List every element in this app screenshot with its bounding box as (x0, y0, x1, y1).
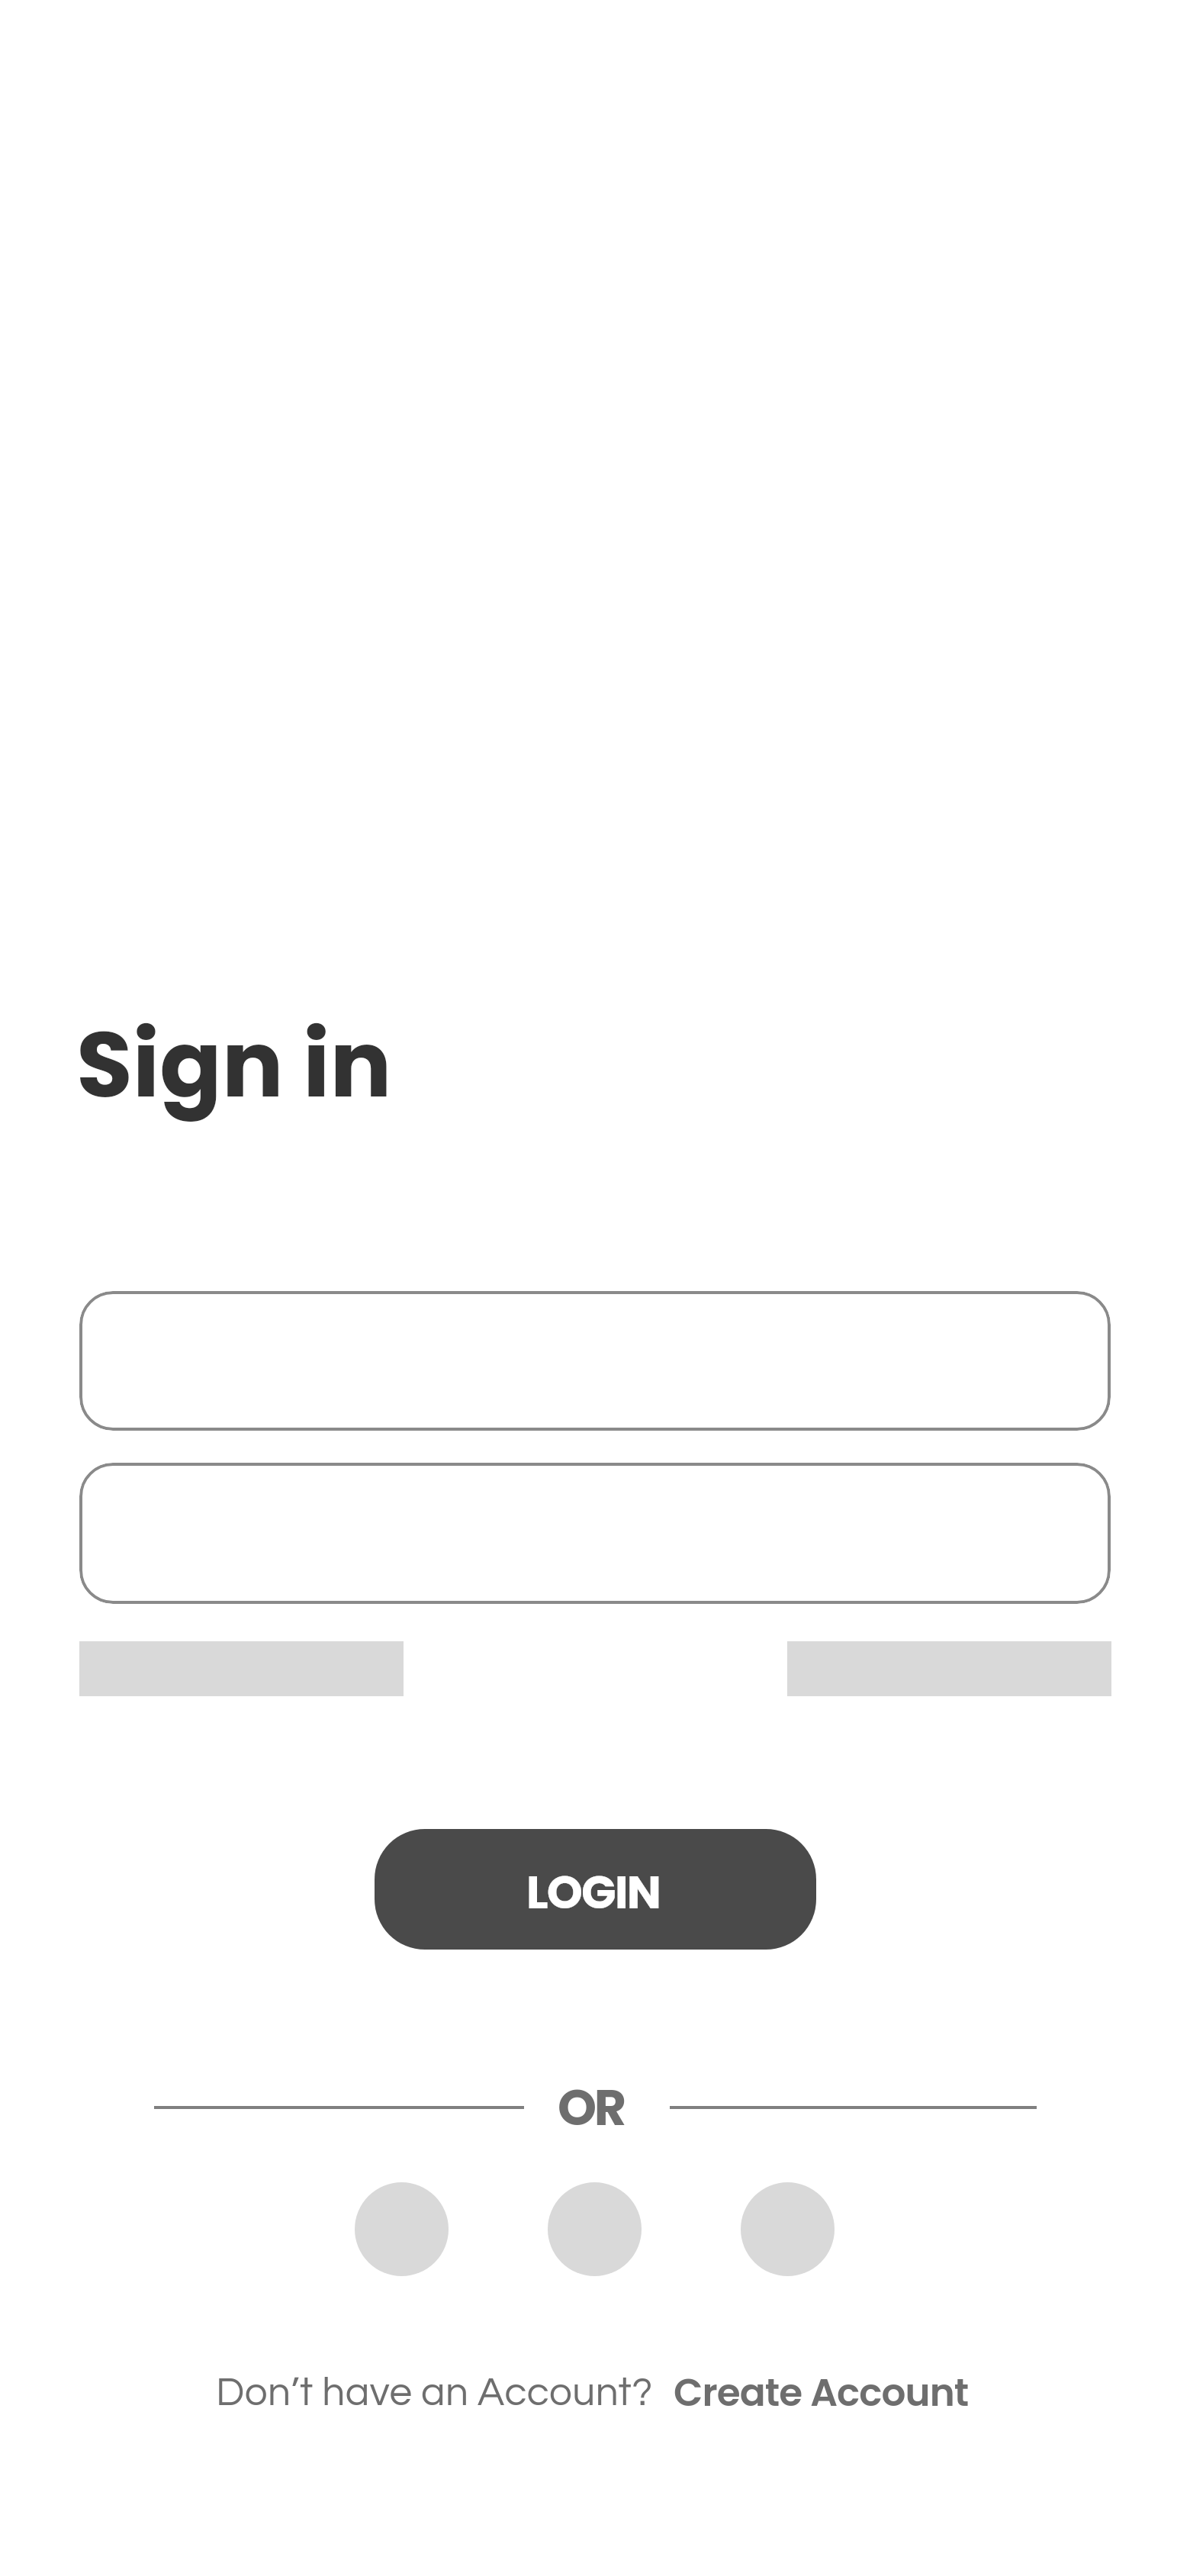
staticText: Sign in (76, 1000, 392, 1129)
staticText: Create Account (674, 2366, 969, 2420)
staticText: OR (558, 2073, 624, 2143)
staticText: Don’t have an Account? (216, 2372, 653, 2414)
button[interactable]: Social sign-in option 3 (741, 2182, 835, 2276)
button[interactable]: Social sign-in option 2 (548, 2182, 642, 2276)
button[interactable]: Social sign-in option 1 (355, 2182, 449, 2276)
button[interactable]: Password field (79, 1463, 1111, 1604)
button[interactable]: Create Account (658, 2349, 982, 2433)
button[interactable]: Forgot password (787, 1641, 1111, 1696)
button[interactable]: LOGIN (375, 1829, 816, 1950)
button[interactable]: Remember me (79, 1641, 404, 1696)
staticText: LOGIN (526, 1860, 661, 1924)
button[interactable]: Email address field (79, 1291, 1111, 1431)
